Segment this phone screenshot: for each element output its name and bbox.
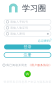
button[interactable]: 微信登录 <box>24 71 31 77</box>
button[interactable]: 请输入密码 <box>4 31 51 36</box>
button[interactable]: 请输入验证码 <box>4 25 51 30</box>
staticText: 请输入验证码 <box>10 26 28 29</box>
button[interactable]: 请输入手机号 <box>4 19 51 24</box>
staticText: W <box>25 71 29 77</box>
button[interactable]: 登录 <box>4 44 51 49</box>
button[interactable]: 我已阅读并同意 <box>3 63 52 67</box>
staticText: 请输入密码 <box>10 32 25 35</box>
staticText: 注册 <box>23 52 31 57</box>
staticText: 登录 <box>23 44 31 49</box>
staticText: 学习圈 <box>22 3 46 13</box>
staticText: 忘记密码? <box>38 39 51 42</box>
staticText: 请输入手机号 <box>10 20 28 23</box>
staticText: 我已阅读并同意 <box>6 63 27 67</box>
staticText: 登录即表示同意用户协议与隐私政策 <box>3 80 51 83</box>
button[interactable]: 忘记密码? <box>38 39 51 42</box>
staticText: 《用户服务协议》 <box>28 63 52 67</box>
button[interactable]: 注册 <box>4 52 51 57</box>
